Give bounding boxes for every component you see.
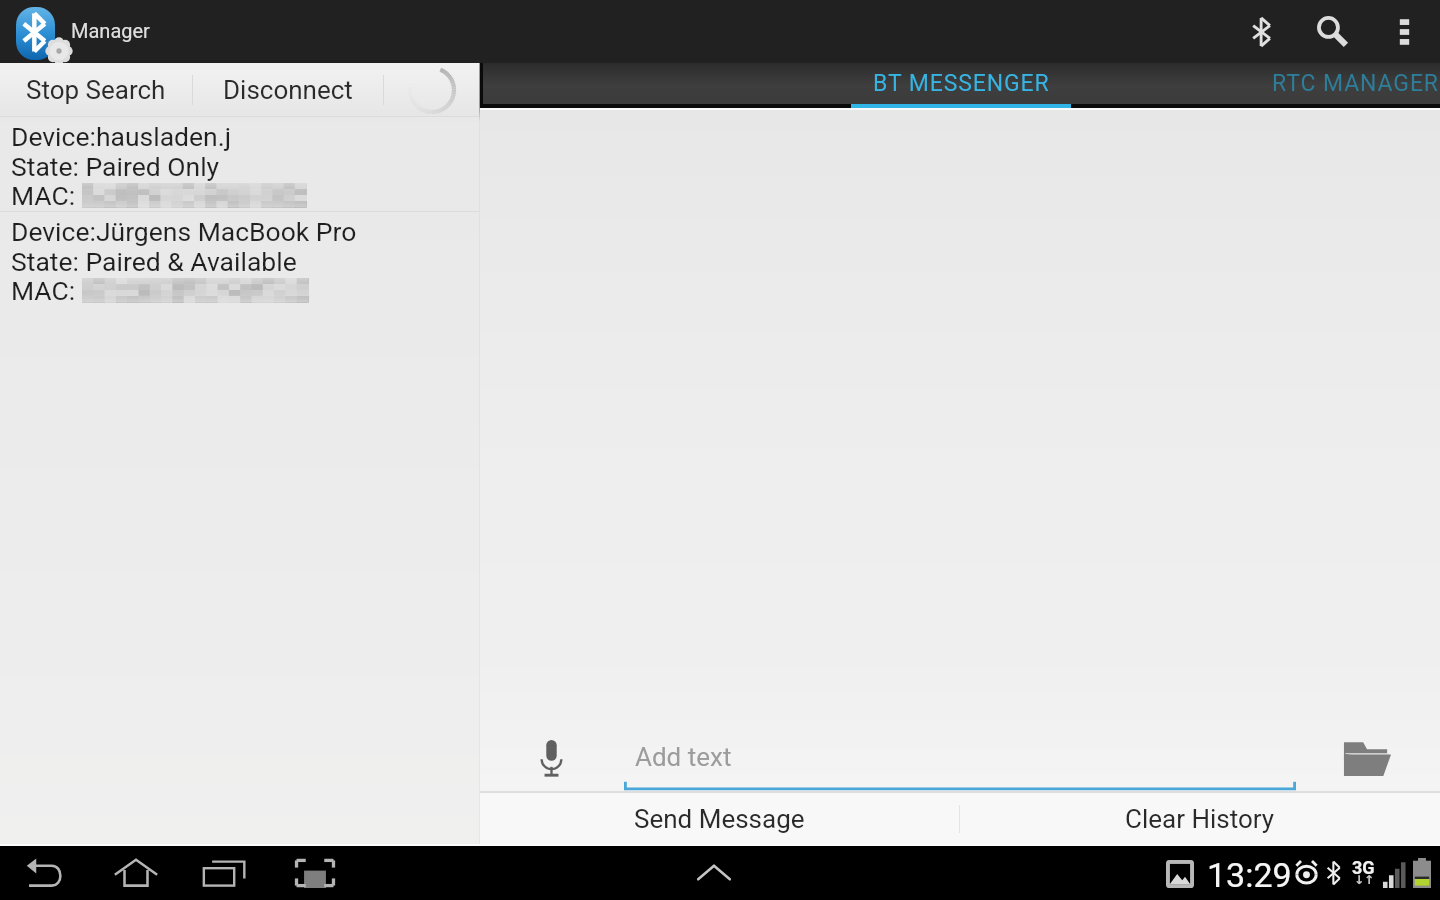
staticText: MAC: <box>11 180 76 211</box>
button[interactable]: RTC MANAGER <box>1160 63 1440 108</box>
staticText: State: Paired Only <box>11 151 220 182</box>
button[interactable]: Device:hausladen.j <box>0 117 479 211</box>
button[interactable]: Disconnect <box>193 63 383 116</box>
button[interactable]: Screenshot <box>270 846 360 900</box>
staticText: ↓↑ <box>1354 873 1375 887</box>
staticText: Manager <box>71 19 150 42</box>
staticText: MAC: <box>11 275 76 306</box>
staticText: BT MESSENGER <box>873 70 1050 97</box>
staticText: 13:29 <box>1207 855 1292 895</box>
button[interactable]: BT MESSENGER <box>851 63 1071 108</box>
button[interactable]: Device:Jürgens MacBook Pro <box>0 212 479 313</box>
button[interactable]: Back <box>0 846 92 900</box>
staticText: Add text <box>635 742 732 772</box>
staticText: 3G <box>1352 857 1375 878</box>
button[interactable]: Stop Search <box>0 63 192 116</box>
button[interactable]: Recents <box>180 846 270 900</box>
staticText: Stop Search <box>26 75 166 105</box>
staticText: Clear History <box>1125 804 1275 834</box>
button[interactable]: Home <box>92 846 180 900</box>
staticText: Device:Jürgens MacBook Pro <box>11 216 357 247</box>
button[interactable]: Voice input <box>508 726 592 791</box>
staticText: Device:hausladen.j <box>11 121 232 152</box>
staticText: RTC MANAGER <box>1272 70 1439 97</box>
button[interactable]: More options <box>1368 0 1440 63</box>
button[interactable]: Clear History <box>960 793 1440 844</box>
button[interactable]: Expand notifications <box>664 846 764 900</box>
button[interactable]: Open file <box>1305 726 1415 791</box>
staticText: State: Paired & Available <box>11 246 297 277</box>
button[interactable]: Bluetooth <box>1226 0 1298 63</box>
staticText: Disconnect <box>223 75 353 105</box>
staticText: Send Message <box>634 804 805 834</box>
button[interactable]: Send Message <box>480 793 959 844</box>
button[interactable]: Search <box>1298 0 1368 63</box>
